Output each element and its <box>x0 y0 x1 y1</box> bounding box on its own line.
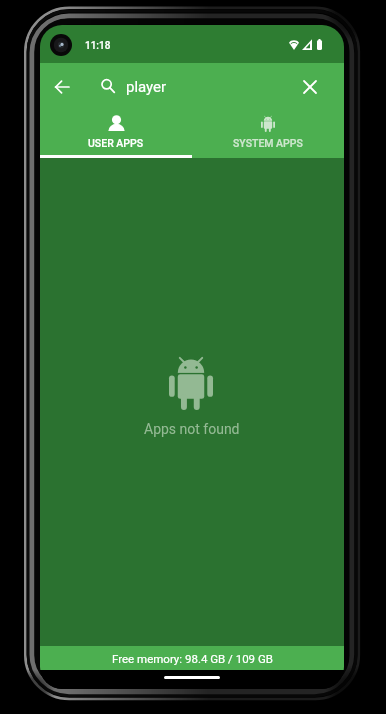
staticText: player <box>126 78 167 96</box>
staticText: Apps not found <box>144 421 240 437</box>
staticText: Free memory: 98.4 GB / 109 GB <box>112 652 273 665</box>
staticText: 11:18 <box>85 40 111 52</box>
button[interactable]: Clear search <box>298 63 344 110</box>
staticText: USER APPS <box>88 137 144 149</box>
button[interactable]: USER APPS <box>40 110 192 158</box>
staticText: SYSTEM APPS <box>233 137 303 149</box>
button[interactable]: Back <box>40 63 84 110</box>
button[interactable]: SYSTEM APPS <box>192 110 344 158</box>
